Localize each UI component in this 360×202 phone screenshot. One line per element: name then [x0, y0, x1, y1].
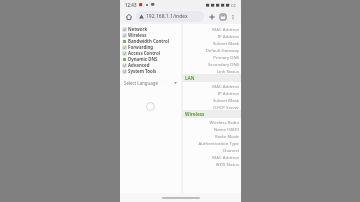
staticText: MAC Address: [212, 26, 239, 32]
button[interactable]: Home: [123, 11, 134, 22]
staticText: 12:43: [125, 2, 137, 8]
staticText: Wireless Radio: [209, 119, 239, 125]
staticText: Select Language: [124, 80, 158, 86]
staticText: Channel: [222, 147, 239, 153]
staticText: Link Status: [216, 68, 239, 74]
staticText: IP Address: [217, 33, 239, 39]
staticText: Primary DNS: [213, 54, 239, 60]
button[interactable]: 192.168.1.1/index: [136, 11, 204, 22]
staticText: Wireless: [185, 111, 205, 117]
button[interactable]: Select Language: [122, 79, 179, 86]
staticText: MAC Address: [212, 83, 239, 89]
button[interactable]: New tab: [206, 11, 217, 22]
staticText: Dynamic DNS: [128, 56, 158, 62]
staticText: Authentication Type: [198, 140, 239, 146]
staticText: Radio Mode: [214, 133, 239, 139]
button[interactable]: Dynamic DNS: [120, 56, 181, 62]
staticText: DHCP Server: [213, 104, 239, 110]
staticText: 192.168.1.1/index: [146, 13, 188, 20]
staticText: LAN: [185, 75, 195, 81]
staticText: MAC Address: [212, 154, 239, 160]
button[interactable]: More options: [228, 12, 238, 22]
staticText: Forwarding: [128, 44, 154, 50]
staticText: Subnet Mask: [212, 97, 239, 103]
staticText: IP Address: [217, 90, 239, 96]
staticText: Advanced: [128, 62, 150, 68]
staticText: CC: [231, 3, 236, 8]
staticText: WDS Status: [215, 161, 239, 167]
button[interactable]: Access Control: [120, 50, 181, 56]
button[interactable]: Wireless: [120, 32, 181, 38]
staticText: Subnet Mask: [212, 40, 239, 46]
button[interactable]: Tabs: [217, 11, 228, 22]
staticText: Default Gateway: [205, 47, 239, 53]
button[interactable]: Advanced: [120, 62, 181, 68]
button[interactable]: Network: [120, 26, 181, 32]
staticText: Network: [128, 26, 148, 32]
staticText: Bandwidth Control: [128, 38, 170, 44]
staticText: Access Control: [128, 50, 160, 56]
button[interactable]: System Tools: [120, 68, 181, 74]
staticText: Secondary DNS: [208, 61, 239, 67]
button[interactable]: Bandwidth Control: [120, 38, 181, 44]
button[interactable]: Forwarding: [120, 44, 181, 50]
staticText: Wireless: [128, 32, 147, 38]
staticText: System Tools: [128, 68, 157, 74]
staticText: Name (SSID): [213, 126, 239, 132]
